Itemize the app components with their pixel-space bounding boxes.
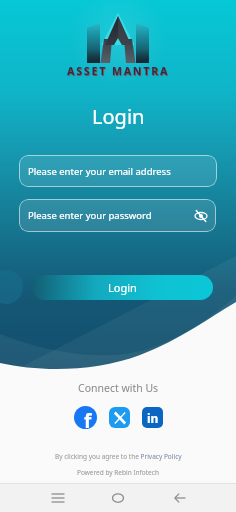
button[interactable] [38, 484, 78, 512]
staticText: in [147, 410, 159, 426]
staticText: Login [92, 103, 145, 130]
button[interactable]: in [142, 407, 163, 428]
staticText: By clicking you agree to the Privacy Pol… [55, 452, 182, 461]
staticText: Login [108, 280, 137, 295]
staticText: Powered by Rebin Infotech [77, 468, 159, 477]
button[interactable] [109, 407, 130, 428]
button[interactable]: Please enter your password [19, 199, 216, 232]
button[interactable] [160, 484, 200, 512]
staticText: Please enter your email address [28, 165, 171, 178]
staticText: Please enter your password [28, 209, 152, 222]
staticText: ASSET MANTRA [67, 64, 170, 78]
button[interactable]: Please enter your email address [19, 155, 217, 187]
button[interactable]: Login [32, 275, 213, 300]
staticText: Connect with Us [78, 381, 159, 395]
button[interactable]: f [74, 406, 97, 429]
staticText: f [84, 408, 92, 429]
button[interactable] [98, 484, 138, 512]
